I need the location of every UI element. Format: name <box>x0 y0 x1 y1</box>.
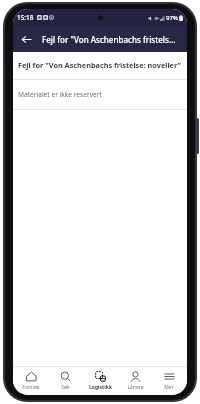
staticText: Søk <box>61 384 70 391</box>
button[interactable]: Forside <box>14 367 48 395</box>
staticText: 15:18 <box>17 13 34 22</box>
button[interactable]: Søk <box>48 367 82 395</box>
button[interactable]: Logistikk <box>83 367 117 395</box>
staticText: Mer <box>164 384 174 391</box>
staticText: Fejl for "Von Aschenbachs fristelse: nov… <box>18 60 181 70</box>
staticText: Logistikk <box>89 384 112 391</box>
button[interactable]: Tilbake <box>13 26 39 52</box>
staticText: 97% <box>166 14 178 22</box>
button[interactable]: Mer <box>152 367 186 395</box>
button[interactable]: Lånere <box>118 367 152 395</box>
staticText: Materialet er ikke reservert <box>18 90 102 99</box>
staticText: Lånere <box>127 384 144 391</box>
staticText: Forside <box>22 384 40 391</box>
staticText: Fejl for "Von Aschenbachs fristels… <box>42 34 183 45</box>
